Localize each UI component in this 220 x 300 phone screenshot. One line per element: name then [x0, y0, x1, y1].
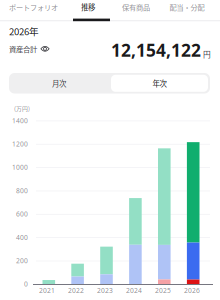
button[interactable]: ポートフォリオ [2, 0, 64, 14]
button[interactable]: 年次 [109, 73, 210, 93]
staticText: 1400 [12, 116, 28, 125]
staticText: 月次 [52, 78, 66, 89]
staticText: 2022 [68, 286, 84, 295]
staticText: 円 [203, 48, 211, 60]
staticText: 2024 [126, 286, 142, 295]
button[interactable]: 配当・分配 [163, 0, 211, 14]
staticText: 400 [16, 233, 28, 242]
button[interactable]: 保有商品 [116, 0, 156, 14]
staticText: 2025 [155, 286, 171, 295]
staticText: 600 [16, 209, 28, 218]
staticText: 1000 [12, 163, 28, 172]
staticText: 200 [16, 256, 28, 265]
staticText: (万円) [14, 104, 30, 113]
staticText: 保有商品 [122, 2, 150, 12]
button[interactable]: 月次 [9, 73, 210, 93]
staticText: 2021 [39, 286, 55, 295]
staticText: 資産合計 [9, 43, 37, 54]
staticText: 配当・分配 [169, 2, 204, 12]
button[interactable]: 推移 [69, 0, 107, 14]
staticText: 800 [16, 186, 28, 195]
staticText: 2026 [184, 286, 200, 295]
staticText: 12,154,122 [111, 38, 201, 61]
staticText: 推移 [81, 2, 95, 12]
staticText: 年次 [152, 78, 166, 89]
button[interactable]: 月次 [9, 73, 109, 93]
staticText: ポートフォリオ [9, 2, 58, 12]
staticText: 2026年 [9, 24, 39, 38]
staticText: 0 [24, 280, 28, 288]
staticText: 1200 [12, 139, 28, 148]
staticText: 2023 [97, 286, 113, 295]
